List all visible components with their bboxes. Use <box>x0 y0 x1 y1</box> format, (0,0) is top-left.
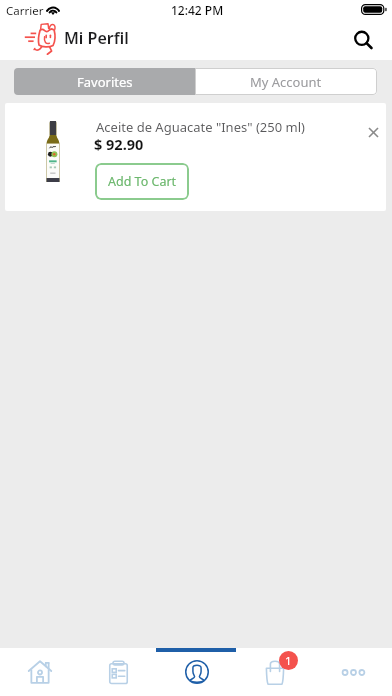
button[interactable]: Orders <box>79 648 158 696</box>
staticText: $ 92.90 <box>94 134 144 154</box>
button[interactable]: More <box>314 648 392 696</box>
staticText: Add To Cart <box>108 173 177 190</box>
staticText: Favorites <box>77 73 133 91</box>
staticText: 12:42 PM <box>171 2 224 18</box>
staticText: Aceite de Aguacate "Ines" (250 ml) <box>96 118 305 136</box>
button[interactable]: My Account <box>195 68 377 95</box>
button[interactable]: Favorites <box>14 68 195 95</box>
button[interactable]: Home <box>0 648 79 696</box>
button[interactable]: Add To Cart <box>95 163 189 200</box>
button[interactable]: Search <box>347 24 381 58</box>
button[interactable]: Aceite de Aguacate "Ines" (250 ml) <box>5 103 386 211</box>
button[interactable]: Cart <box>236 648 314 696</box>
staticText: Mi Perfil <box>64 27 129 49</box>
staticText: 1 <box>285 653 292 669</box>
staticText: My Account <box>250 73 322 91</box>
button[interactable]: Profile <box>158 648 236 696</box>
staticText: Carrier <box>6 3 44 19</box>
button[interactable]: Remove item <box>356 115 386 149</box>
